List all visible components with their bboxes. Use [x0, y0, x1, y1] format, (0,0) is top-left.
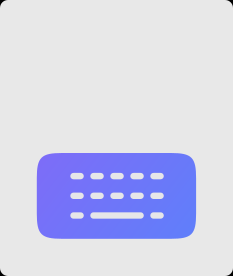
button[interactable]: Keyboard [37, 153, 196, 239]
